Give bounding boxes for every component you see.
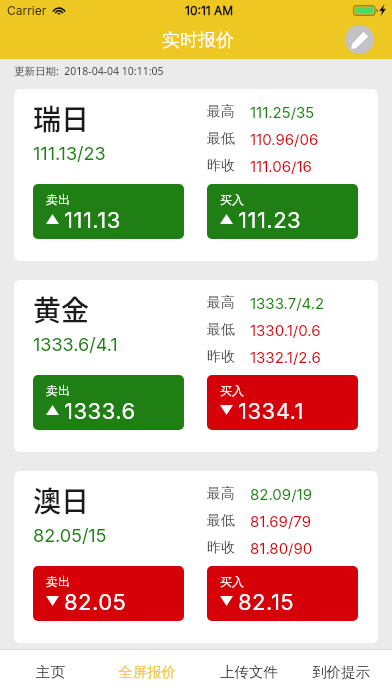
staticText: Carrier	[7, 3, 47, 18]
button[interactable]: 澳日	[14, 471, 378, 643]
button[interactable]: 卖出	[33, 184, 184, 239]
staticText: 110.96/06	[250, 130, 319, 148]
staticText: 买入	[220, 192, 244, 207]
button[interactable]: 买入	[207, 566, 358, 621]
button[interactable]: 买入	[207, 375, 358, 430]
staticText: 82.05/15	[33, 525, 107, 547]
staticText: 最低	[207, 512, 235, 530]
staticText: 全屏报价	[118, 663, 176, 681]
staticText: 111.06/16	[250, 157, 312, 175]
staticText: 82.05	[64, 589, 127, 616]
button[interactable]: 买入	[207, 184, 358, 239]
staticText: 1333.6	[64, 398, 136, 425]
button[interactable]: 到价提示	[294, 650, 392, 696]
staticText: 瑞日	[33, 98, 90, 139]
staticText: 卖出	[46, 574, 70, 589]
staticText: 买入	[220, 574, 244, 589]
staticText: 最低	[207, 130, 235, 148]
staticText: 最低	[207, 321, 235, 339]
staticText: 1333.7/4.2	[250, 294, 325, 312]
staticText: 卖出	[46, 192, 70, 207]
staticText: 昨收	[207, 539, 235, 557]
staticText: 82.15	[238, 589, 294, 616]
staticText: 81.80/90	[250, 539, 313, 557]
staticText: 82.09/19	[250, 485, 312, 503]
staticText: 最高	[207, 103, 235, 121]
staticText: 1333.6/4.1	[33, 334, 118, 356]
staticText: 黄金	[33, 289, 90, 330]
staticText: 昨收	[207, 348, 235, 366]
button[interactable]: 瑞日	[14, 89, 378, 261]
staticText: 卖出	[46, 383, 70, 398]
staticText: 10:11 AM	[185, 3, 234, 18]
staticText: 最高	[207, 485, 235, 503]
staticText: 昨收	[207, 157, 235, 175]
staticText: 实时报价	[162, 29, 234, 52]
button[interactable]: 卖出	[33, 375, 184, 430]
staticText: 111.25/35	[250, 103, 315, 121]
button[interactable]: 全屏报价	[98, 650, 196, 696]
staticText: 到价提示	[312, 663, 370, 681]
staticText: 111.13/23	[33, 143, 106, 165]
staticText: 111.13	[64, 207, 121, 234]
staticText: 1332.1/2.6	[250, 348, 321, 366]
staticText: 主页	[36, 663, 65, 681]
staticText: 111.23	[238, 207, 302, 234]
staticText: 更新日期: 2018-04-04 10:11:05	[14, 64, 164, 78]
button[interactable]: 主页	[0, 650, 98, 696]
staticText: 1330.1/0.6	[250, 321, 321, 339]
button[interactable]: 黄金	[14, 280, 378, 452]
button[interactable]: 上传文件	[196, 650, 294, 696]
staticText: 1334.1	[238, 398, 304, 425]
button[interactable]: 卖出	[33, 566, 184, 621]
button[interactable]: Edit	[345, 25, 374, 54]
staticText: 买入	[220, 383, 244, 398]
staticText: 澳日	[33, 480, 90, 521]
staticText: 上传文件	[220, 663, 278, 681]
staticText: 最高	[207, 294, 235, 312]
staticText: 81.69/79	[250, 512, 311, 530]
